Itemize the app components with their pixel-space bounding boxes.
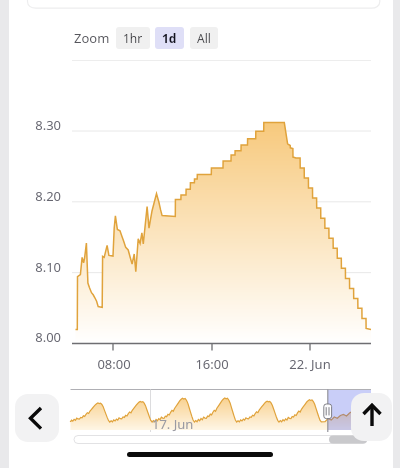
staticText: 16:00 (182, 355, 242, 373)
staticText: 1d (162, 30, 177, 46)
staticText: 17. Jun (152, 415, 194, 433)
staticText: 8.20 (21, 187, 61, 205)
button[interactable]: Back (15, 394, 59, 442)
staticText: 8.30 (21, 116, 61, 134)
staticText: 08:00 (84, 355, 144, 373)
staticText: All (197, 30, 211, 46)
staticText: Zoom (74, 29, 110, 47)
staticText: 22. Jun (280, 355, 340, 373)
staticText: 1hr (123, 30, 143, 46)
button[interactable]: Scroll to top (351, 393, 392, 441)
button[interactable]: All (190, 27, 218, 49)
staticText: 8.10 (21, 258, 61, 276)
staticText: 8.00 (21, 328, 61, 346)
button[interactable]: 1hr (116, 27, 150, 49)
button[interactable]: 1d (155, 27, 184, 49)
